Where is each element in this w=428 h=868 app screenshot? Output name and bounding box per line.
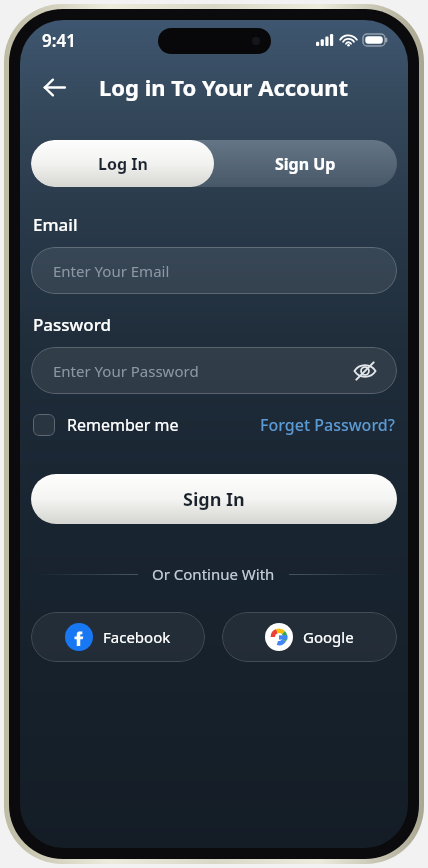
button[interactable]: Sign In xyxy=(31,474,397,524)
staticText: Facebook xyxy=(103,627,171,647)
button[interactable]: Show password xyxy=(351,357,379,385)
button[interactable]: Remember me xyxy=(33,414,179,436)
staticText: Email xyxy=(33,213,78,236)
staticText: Remember me xyxy=(67,414,179,436)
staticText: Forget Password? xyxy=(260,414,395,436)
staticText: Sign Up xyxy=(275,153,336,175)
button[interactable]: Facebook xyxy=(31,612,205,662)
button[interactable]: Forget Password? xyxy=(260,414,395,436)
staticText: Log in To Your Account xyxy=(99,72,348,102)
button[interactable]: Back xyxy=(34,67,74,107)
staticText: Google xyxy=(303,627,354,647)
staticText: Enter Your Email xyxy=(53,261,379,281)
button[interactable]: Log In xyxy=(31,140,214,187)
button[interactable]: Enter Your Email xyxy=(31,247,397,294)
staticText: 9:41 xyxy=(42,29,76,52)
staticText: Password xyxy=(33,313,112,336)
button[interactable]: Enter Your Password xyxy=(31,347,397,394)
staticText: Enter Your Password xyxy=(53,361,351,381)
staticText: Or Continue With xyxy=(152,564,275,584)
staticText: Log In xyxy=(98,153,148,175)
staticText: Sign In xyxy=(183,487,245,512)
button[interactable]: Google xyxy=(222,612,397,662)
button[interactable]: Sign Up xyxy=(214,140,397,187)
